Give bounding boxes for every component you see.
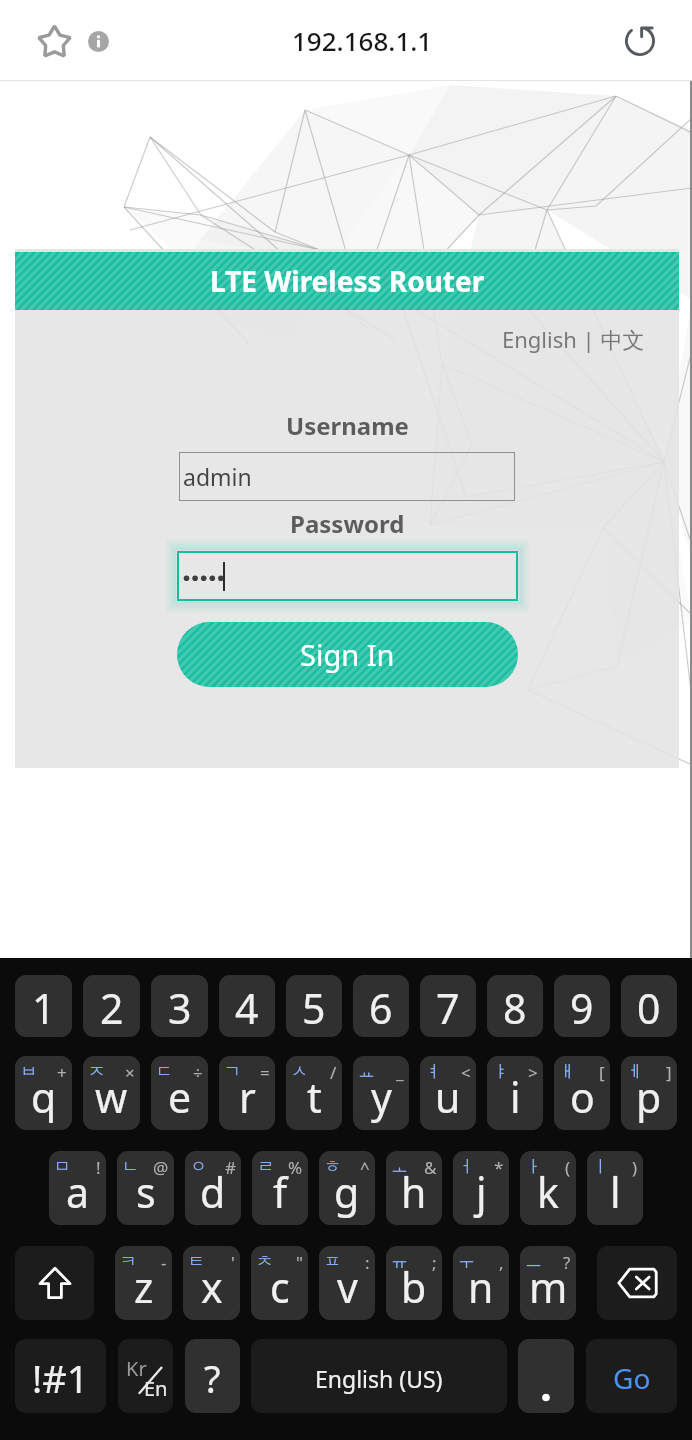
button[interactable]: p bbox=[621, 1056, 677, 1130]
button[interactable]: o bbox=[554, 1056, 610, 1130]
button[interactable]: 3 bbox=[151, 975, 208, 1037]
staticText: ㅔ bbox=[626, 1061, 643, 1082]
staticText: ( bbox=[565, 1156, 571, 1179]
staticText: En bbox=[144, 1375, 168, 1402]
staticText: Username bbox=[286, 409, 409, 442]
staticText: ! bbox=[96, 1156, 101, 1179]
staticText: q bbox=[31, 1069, 57, 1125]
button[interactable]: k bbox=[520, 1151, 576, 1225]
staticText: & bbox=[424, 1156, 437, 1179]
button[interactable]: 1 bbox=[15, 975, 72, 1037]
staticText: > bbox=[528, 1061, 538, 1084]
button[interactable]: English | 中文 bbox=[502, 324, 645, 354]
staticText: ㅜ bbox=[458, 1251, 475, 1272]
staticText: ㅁ bbox=[54, 1156, 71, 1177]
button[interactable]: a bbox=[49, 1151, 106, 1225]
staticText: 1 bbox=[32, 980, 56, 1036]
staticText: a bbox=[66, 1164, 90, 1220]
button[interactable]: admin bbox=[179, 452, 515, 501]
button[interactable]: Backspace bbox=[597, 1246, 677, 1320]
button[interactable]: c bbox=[251, 1246, 308, 1320]
button[interactable]: English (US) bbox=[251, 1339, 507, 1413]
staticText: o bbox=[570, 1069, 595, 1125]
button[interactable]: j bbox=[453, 1151, 509, 1225]
button[interactable]: ? bbox=[185, 1339, 240, 1413]
button[interactable]: m bbox=[520, 1246, 576, 1320]
staticText: * bbox=[494, 1156, 504, 1179]
button[interactable]: Bookmark bbox=[24, 11, 84, 71]
staticText: 7 bbox=[436, 980, 460, 1036]
button[interactable]: q bbox=[15, 1056, 72, 1130]
staticText: ㅊ bbox=[256, 1251, 273, 1272]
button[interactable]: Shift bbox=[15, 1246, 94, 1320]
button[interactable]: n bbox=[453, 1246, 509, 1320]
button[interactable] bbox=[177, 551, 518, 601]
staticText: z bbox=[134, 1259, 154, 1315]
staticText: " bbox=[296, 1251, 303, 1274]
button[interactable]: 2 bbox=[83, 975, 140, 1037]
button[interactable]: t bbox=[286, 1056, 342, 1130]
staticText: : bbox=[365, 1251, 370, 1274]
button[interactable]: s bbox=[117, 1151, 174, 1225]
staticText: < bbox=[461, 1061, 471, 1084]
staticText: 5 bbox=[302, 980, 326, 1036]
staticText: k bbox=[537, 1164, 559, 1220]
button[interactable]: Change language bbox=[118, 1339, 173, 1413]
staticText: , bbox=[499, 1251, 504, 1274]
button[interactable]: z bbox=[115, 1246, 172, 1320]
button[interactable]: l bbox=[587, 1151, 643, 1225]
staticText: Password bbox=[290, 507, 405, 540]
staticText: ÷ bbox=[193, 1061, 203, 1084]
button[interactable]: 5 bbox=[286, 975, 342, 1037]
button[interactable]: i bbox=[487, 1056, 543, 1130]
staticText: y bbox=[371, 1069, 392, 1125]
staticText: ) bbox=[632, 1156, 638, 1179]
button[interactable]: 0 bbox=[621, 975, 677, 1037]
button[interactable]: h bbox=[386, 1151, 442, 1225]
staticText: b bbox=[401, 1259, 427, 1315]
button[interactable]: e bbox=[151, 1056, 208, 1130]
button[interactable]: 8 bbox=[487, 975, 543, 1037]
staticText: ㅛ bbox=[358, 1061, 375, 1082]
button[interactable]: w bbox=[83, 1056, 140, 1130]
staticText: ? bbox=[204, 1352, 221, 1404]
staticText: 2 bbox=[100, 980, 124, 1036]
button[interactable]: !#1 bbox=[15, 1339, 106, 1413]
button[interactable]: g bbox=[319, 1151, 375, 1225]
button[interactable]: Sign In bbox=[177, 622, 518, 687]
button[interactable]: x bbox=[183, 1246, 240, 1320]
button[interactable]: Reload page bbox=[612, 13, 668, 69]
button[interactable]: 6 bbox=[353, 975, 409, 1037]
staticText: Go bbox=[613, 1359, 651, 1397]
staticText: x bbox=[201, 1259, 223, 1315]
button[interactable]: Period bbox=[518, 1339, 574, 1413]
staticText: ㅎ bbox=[324, 1156, 341, 1177]
button[interactable]: f bbox=[252, 1151, 308, 1225]
staticText: ㅣ bbox=[592, 1156, 609, 1177]
button[interactable]: r bbox=[219, 1056, 275, 1130]
staticText: 3 bbox=[168, 980, 192, 1036]
staticText: ㄱ bbox=[224, 1061, 241, 1082]
staticText: r bbox=[239, 1069, 256, 1125]
button[interactable]: b bbox=[386, 1246, 442, 1320]
button[interactable]: d bbox=[185, 1151, 241, 1225]
staticText: i bbox=[510, 1069, 521, 1125]
staticText: ㅕ bbox=[425, 1061, 442, 1082]
button[interactable]: 7 bbox=[420, 975, 476, 1037]
staticText: ㅋ bbox=[120, 1251, 137, 1272]
staticText: 8 bbox=[503, 980, 527, 1036]
staticText: f bbox=[273, 1164, 288, 1220]
button[interactable]: v bbox=[319, 1246, 375, 1320]
staticText: % bbox=[288, 1156, 303, 1179]
staticText: ㅠ bbox=[391, 1251, 408, 1272]
button[interactable]: 9 bbox=[554, 975, 610, 1037]
staticText: g bbox=[334, 1164, 360, 1220]
button[interactable]: Go bbox=[586, 1339, 677, 1413]
button[interactable]: u bbox=[420, 1056, 476, 1130]
staticText: ㄷ bbox=[156, 1061, 173, 1082]
staticText: ㅐ bbox=[559, 1061, 576, 1082]
button[interactable]: Page information bbox=[74, 17, 122, 65]
staticText: ㅡ bbox=[525, 1251, 542, 1272]
button[interactable]: y bbox=[353, 1056, 409, 1130]
button[interactable]: 4 bbox=[219, 975, 275, 1037]
